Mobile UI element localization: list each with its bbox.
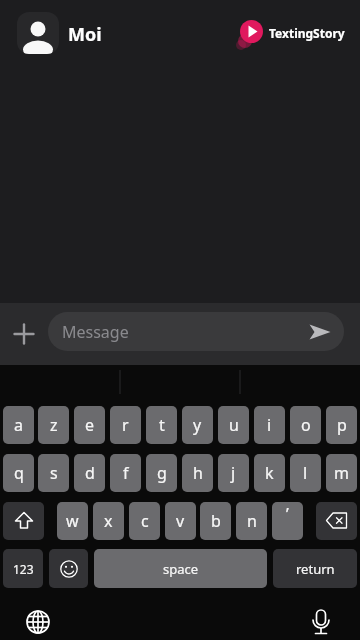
button[interactable]: i [254,406,285,444]
button[interactable]: j [218,454,249,492]
staticText: h [193,462,203,484]
staticText: 123 [13,561,34,577]
button[interactable]: a [3,406,34,444]
staticText: i [267,414,272,436]
button[interactable]: z [38,406,69,444]
staticText: u [229,414,239,436]
button[interactable]: m [326,454,357,492]
staticText: d [85,462,95,484]
button[interactable]: h [182,454,213,492]
button[interactable]: b [200,502,231,540]
button[interactable]: t [146,406,177,444]
button[interactable]: u [218,406,249,444]
staticText: y [193,414,202,436]
button[interactable] [307,608,335,640]
button[interactable]: o [290,406,321,444]
button[interactable] [316,502,357,540]
button[interactable]: y [182,406,213,444]
staticText: q [14,462,24,484]
button[interactable]: k [254,454,285,492]
button[interactable] [49,549,88,588]
button[interactable]: s [38,454,69,492]
button[interactable]: ’ [272,502,303,540]
button[interactable]: g [146,454,177,492]
button[interactable]: TextingStory [269,25,345,41]
button[interactable]: d [74,454,105,492]
staticText: a [14,414,23,436]
staticText: o [301,414,311,436]
staticText: r [122,414,129,436]
button[interactable] [3,502,44,540]
staticText: e [85,414,95,436]
button[interactable] [10,320,38,348]
button[interactable]: Message [48,312,344,351]
button[interactable] [24,608,52,636]
button[interactable] [17,12,59,54]
staticText: n [247,510,257,532]
staticText: Message [62,321,129,343]
staticText: t [159,414,165,436]
button[interactable]: r [110,406,141,444]
button[interactable]: c [129,502,160,540]
button[interactable]: v [165,502,196,540]
staticText: p [337,414,347,436]
staticText: s [50,462,58,484]
button[interactable]: l [290,454,321,492]
button[interactable]: e [74,406,105,444]
button[interactable]: n [236,502,267,540]
staticText: g [157,462,167,484]
staticText: c [141,510,149,532]
staticText: j [231,462,236,484]
staticText: m [334,462,349,484]
staticText: v [176,510,185,532]
button[interactable]: q [3,454,34,492]
button[interactable]: 123 [3,549,43,588]
button[interactable]: p [326,406,357,444]
button[interactable]: x [93,502,124,540]
button[interactable]: Moi [68,22,102,47]
staticText: return [296,560,335,578]
staticText: ’ [286,503,289,525]
button[interactable]: f [110,454,141,492]
button[interactable]: w [57,502,88,540]
staticText: l [303,462,308,484]
staticText: b [211,510,221,532]
staticText: f [123,462,129,484]
staticText: k [265,462,274,484]
button[interactable]: return [273,549,357,588]
button[interactable]: space [94,549,267,588]
staticText: x [104,510,113,532]
staticText: z [50,414,58,436]
staticText: w [66,510,79,532]
staticText: space [163,560,199,578]
